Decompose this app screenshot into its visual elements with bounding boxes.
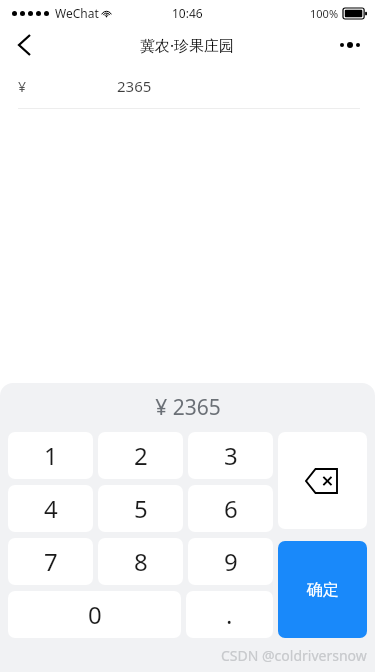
button[interactable]: 5: [98, 485, 183, 532]
staticText: 8: [134, 545, 148, 578]
staticText: CSDN @coldriversnow: [221, 646, 367, 665]
button[interactable]: Back: [0, 26, 48, 64]
staticText: 4: [44, 492, 58, 525]
staticText: 7: [44, 545, 58, 578]
staticText: 6: [224, 492, 238, 525]
button[interactable]: 2: [98, 432, 183, 479]
button[interactable]: ¥: [0, 64, 375, 108]
staticText: 5: [134, 492, 148, 525]
button[interactable]: 1: [8, 432, 93, 479]
button[interactable]: 0: [8, 591, 181, 638]
staticText: 0: [88, 598, 102, 631]
button[interactable]: More options: [325, 26, 375, 64]
staticText: ¥: [18, 77, 27, 96]
button[interactable]: 确定: [278, 541, 367, 638]
staticText: 2365: [117, 76, 152, 96]
button[interactable]: 6: [188, 485, 273, 532]
button[interactable]: Backspace: [278, 432, 367, 529]
staticText: 100%: [310, 6, 339, 21]
button[interactable]: 8: [98, 538, 183, 585]
button[interactable]: 4: [8, 485, 93, 532]
staticText: WeChat: [55, 5, 99, 21]
staticText: 10:46: [172, 5, 203, 21]
staticText: .: [226, 598, 233, 631]
button[interactable]: .: [186, 591, 273, 638]
staticText: 2: [134, 439, 148, 472]
staticText: 1: [44, 439, 58, 472]
staticText: 确定: [307, 580, 339, 600]
staticText: 冀农·珍果庄园: [140, 35, 235, 55]
staticText: 3: [224, 439, 238, 472]
staticText: 9: [224, 545, 238, 578]
staticText: ¥ 2365: [155, 393, 221, 422]
button[interactable]: 9: [188, 538, 273, 585]
button[interactable]: 3: [188, 432, 273, 479]
button[interactable]: 7: [8, 538, 93, 585]
